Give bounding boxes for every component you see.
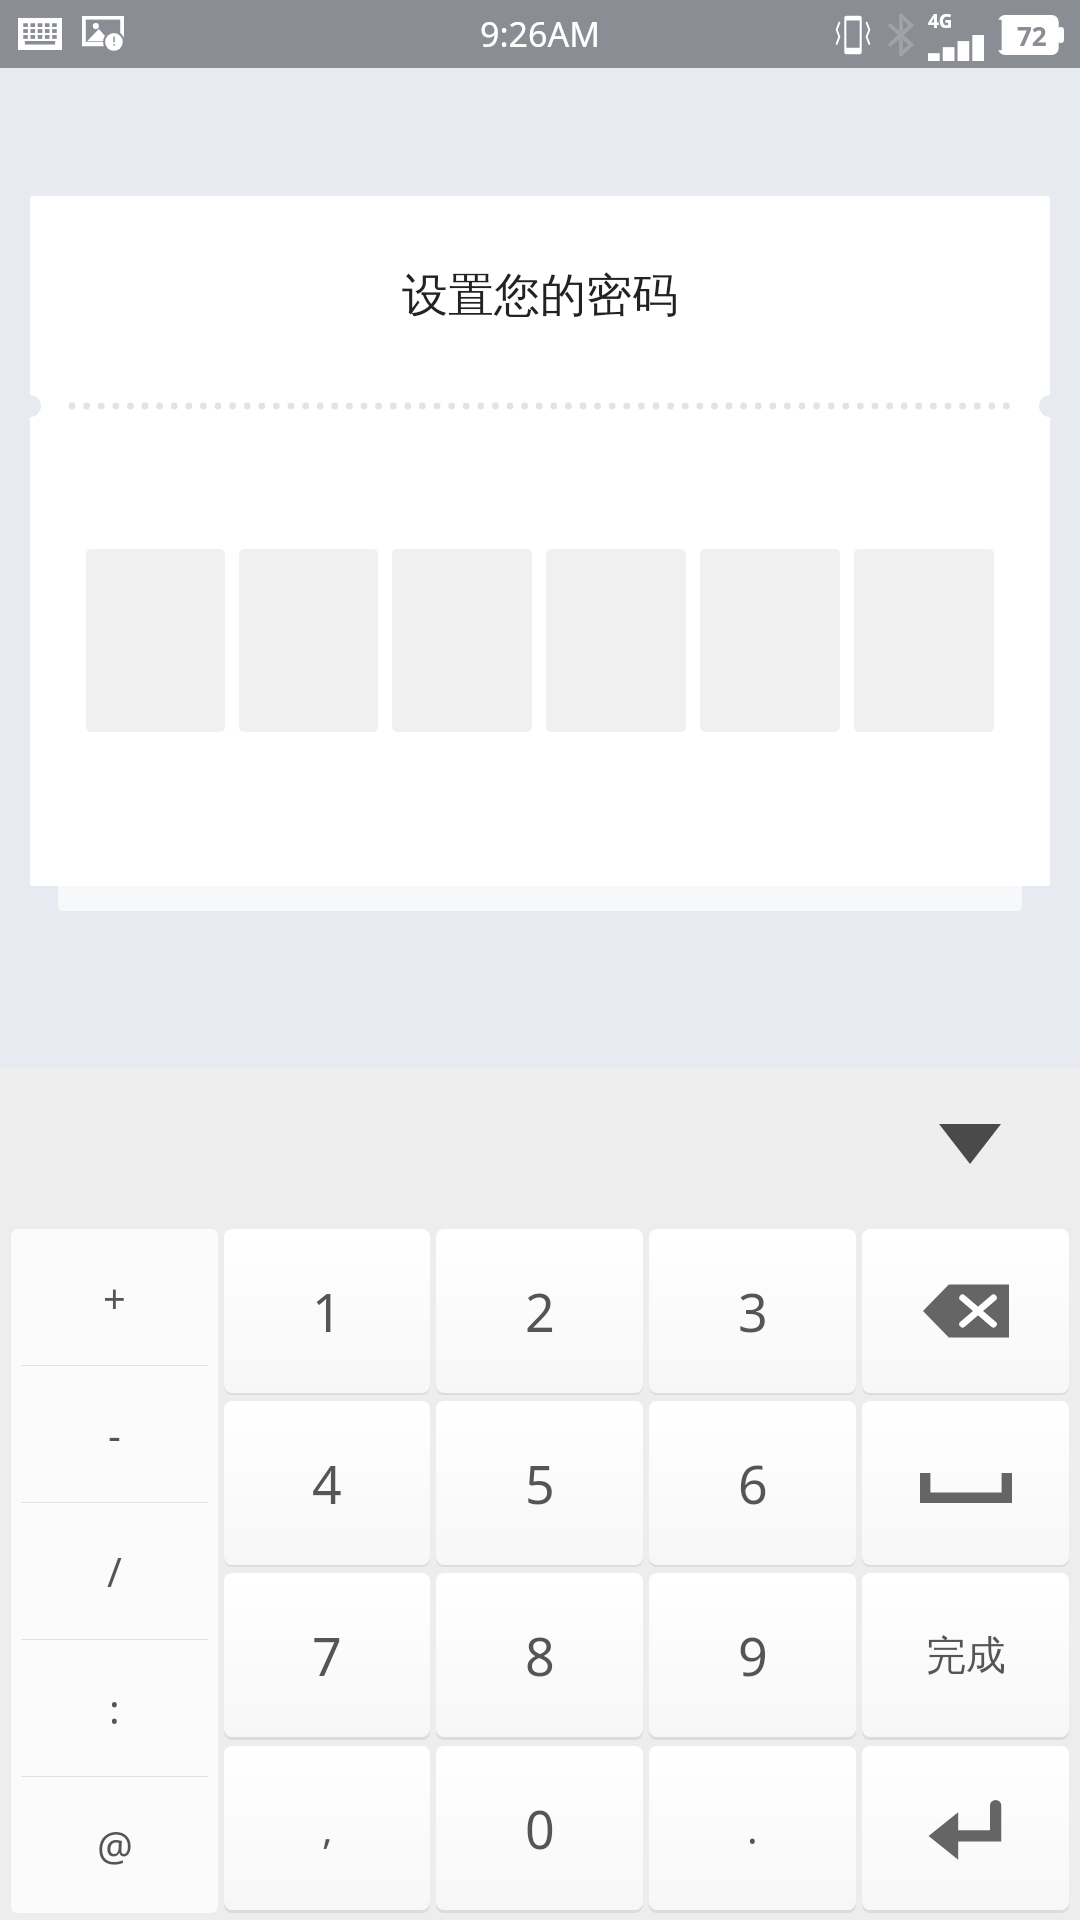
button[interactable]: 1 (224, 1229, 430, 1393)
staticText: 8 (525, 1620, 555, 1691)
staticText: + (103, 1270, 126, 1324)
staticText: 72 (1017, 18, 1047, 53)
staticText: @ (97, 1818, 133, 1872)
button[interactable]: 完成 (862, 1573, 1069, 1737)
staticText: 设置您的密码 (402, 267, 678, 325)
staticText: 5 (525, 1448, 555, 1519)
button[interactable]: 3 (649, 1229, 856, 1393)
other: Space (920, 1463, 1012, 1503)
staticText: 2 (525, 1276, 555, 1347)
button[interactable]: 8 (436, 1573, 643, 1737)
button[interactable]: 2 (436, 1229, 643, 1393)
button[interactable]: 5 (436, 1401, 643, 1565)
button[interactable]: Space (862, 1401, 1069, 1565)
button[interactable]: 4 (224, 1401, 430, 1565)
staticText: 6 (738, 1448, 768, 1519)
button[interactable]: 0 (436, 1746, 643, 1910)
button[interactable]: 6 (649, 1401, 856, 1565)
staticText: - (108, 1407, 121, 1461)
button[interactable]: Hide keyboard (922, 1096, 1018, 1192)
button[interactable]: Backspace (862, 1229, 1069, 1393)
staticText: 7 (312, 1620, 342, 1691)
staticText: 9:26AM (480, 11, 601, 57)
staticText: 1 (312, 1276, 342, 1347)
button[interactable]: @ (11, 1777, 218, 1913)
other: Backspace (923, 1281, 1009, 1341)
staticText: 4 (312, 1448, 342, 1519)
button[interactable]: / (11, 1503, 218, 1639)
button[interactable]: : (11, 1640, 218, 1776)
button[interactable]: 9 (649, 1573, 856, 1737)
button[interactable]: 7 (224, 1573, 430, 1737)
button[interactable]: - (11, 1366, 218, 1502)
staticText: . (747, 1801, 758, 1855)
staticText: : (109, 1681, 120, 1735)
button[interactable]: , (224, 1746, 430, 1910)
button[interactable]: Enter (862, 1746, 1069, 1910)
staticText: 0 (525, 1793, 555, 1864)
staticText: , (322, 1801, 333, 1855)
other: Enter (927, 1795, 1005, 1861)
button[interactable]: + (11, 1229, 218, 1365)
staticText: / (107, 1544, 122, 1598)
button[interactable]: . (649, 1746, 856, 1910)
staticText: 9 (738, 1620, 768, 1691)
staticText: 完成 (926, 1630, 1006, 1680)
staticText: 3 (738, 1276, 768, 1347)
staticText: 4G (928, 8, 953, 34)
